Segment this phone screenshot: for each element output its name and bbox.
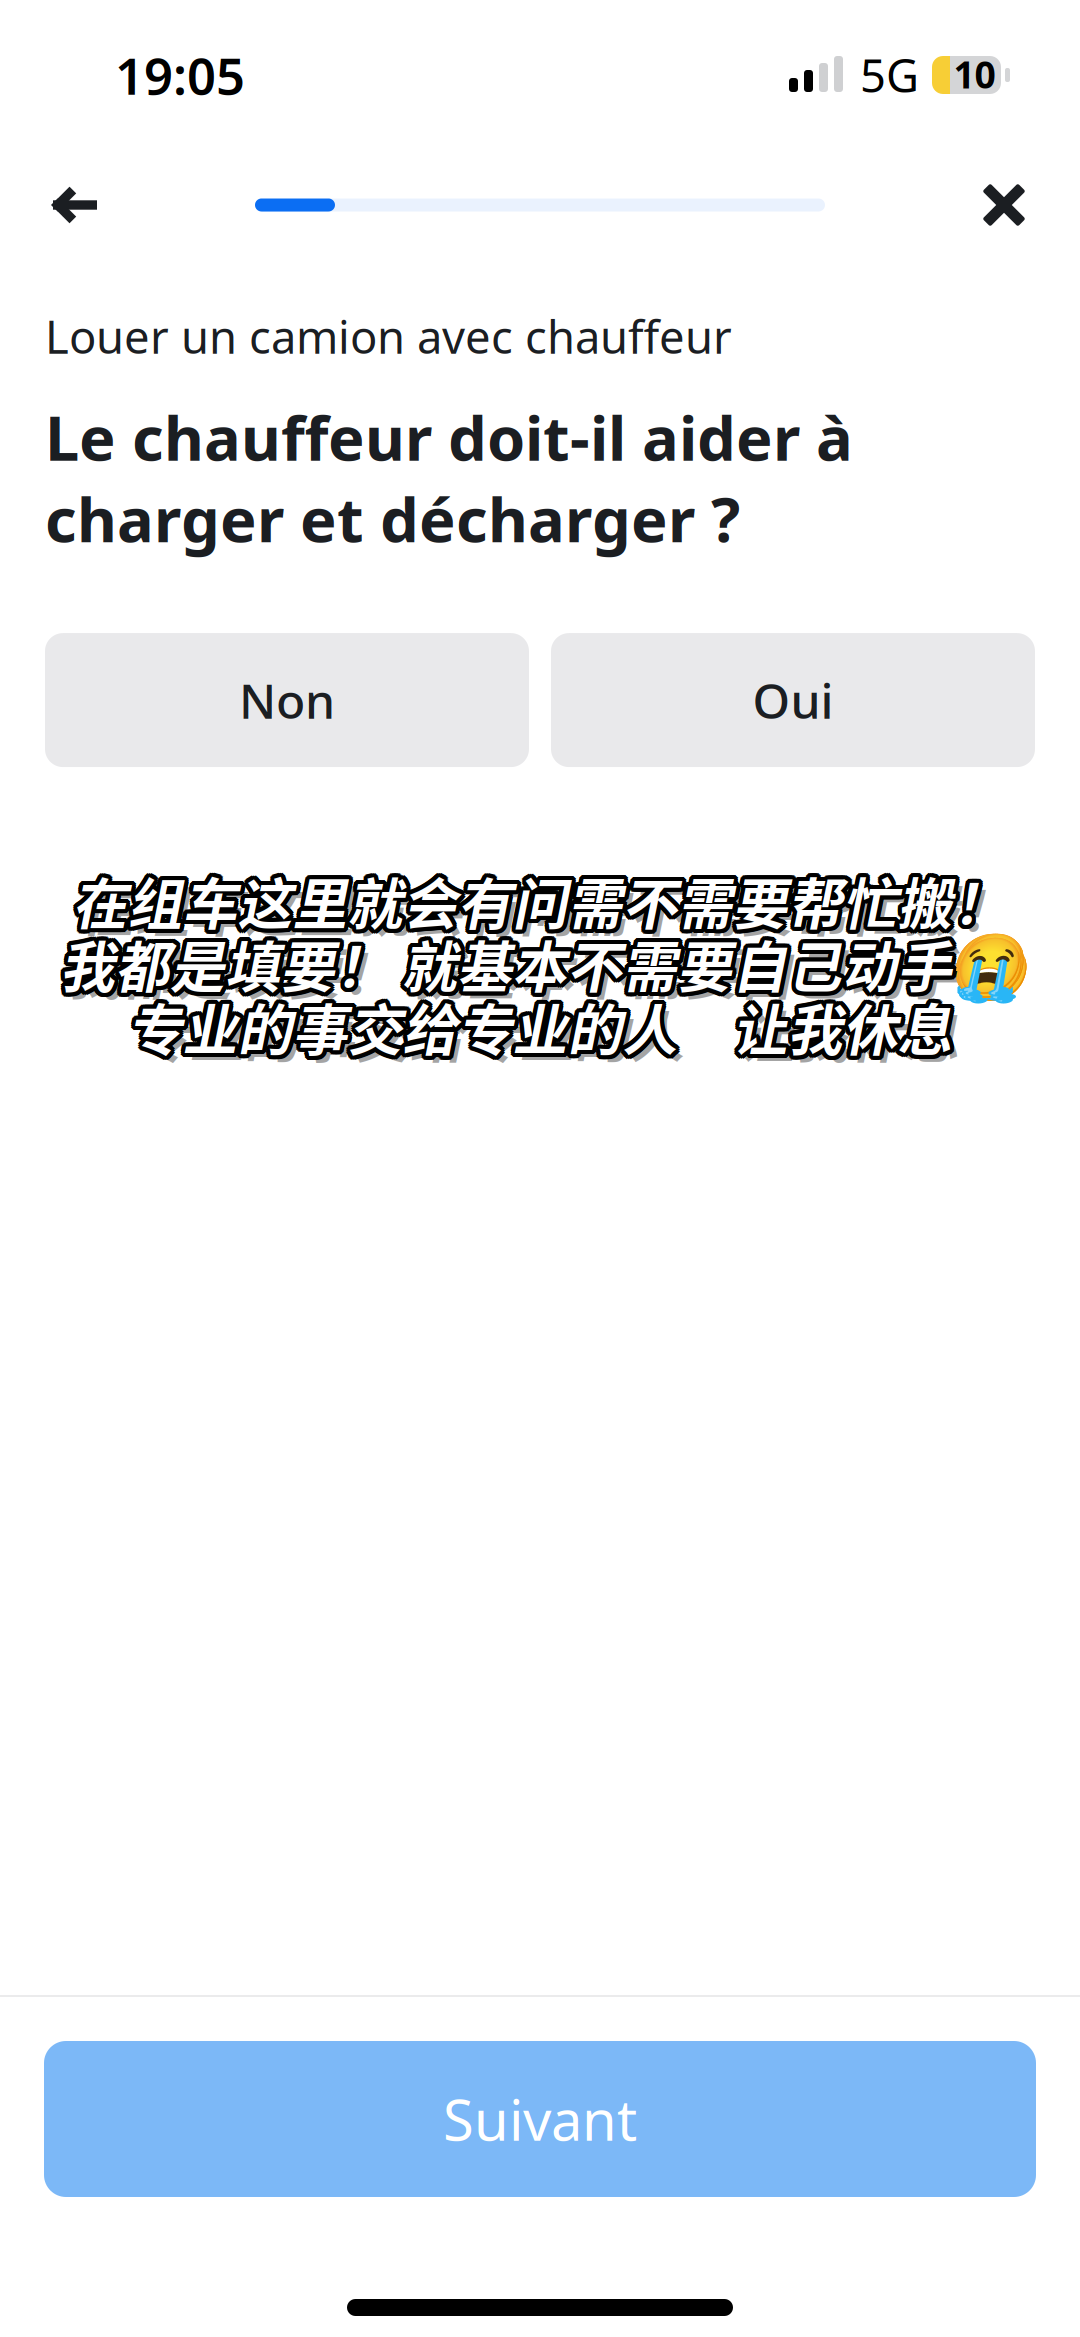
staticText: Louer un camion avec chauffeur — [45, 306, 732, 366]
staticText: 专业的事交给专业的人 让我休息 — [127, 986, 952, 1066]
staticText: 我都是填要！ 就基本不需要自己动手😭 — [60, 923, 1020, 1003]
button[interactable]: Oui — [551, 633, 1035, 767]
staticText: Non — [239, 668, 335, 732]
staticText: Suivant — [443, 2082, 637, 2156]
staticText: 5G — [860, 45, 919, 105]
staticText: 19:05 — [115, 41, 245, 109]
button[interactable]: Non — [45, 633, 529, 767]
button[interactable]: Retour — [22, 150, 126, 260]
staticText: 10 — [953, 49, 995, 99]
staticText: Oui — [752, 668, 833, 732]
staticText: Le chauffeur doit-il aider à charger et … — [45, 396, 853, 559]
staticText: 在组车这里就会有问需不需要帮忙搬！ — [72, 860, 1007, 940]
button[interactable]: Suivant — [44, 2041, 1036, 2197]
button[interactable]: Fermer — [952, 150, 1056, 260]
